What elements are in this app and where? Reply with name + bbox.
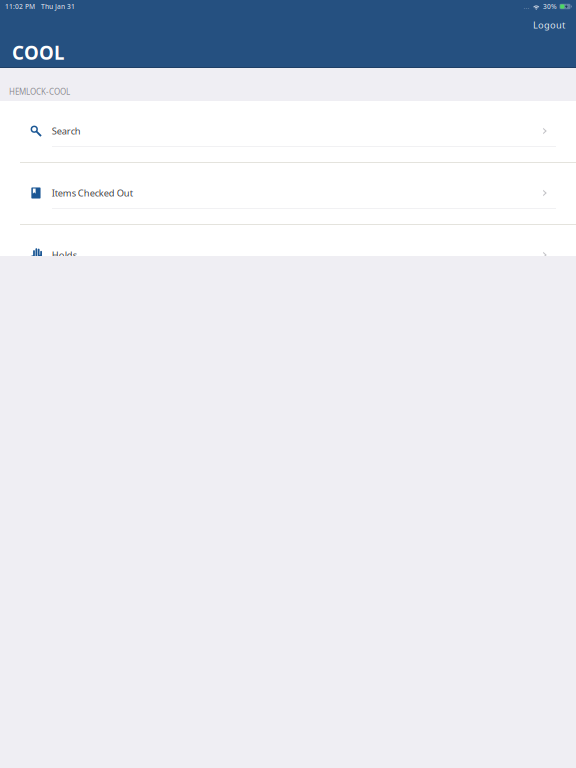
button[interactable]: Items Checked Out: [20, 178, 556, 209]
staticText: ...: [523, 2, 529, 11]
staticText: 30%: [543, 2, 557, 11]
staticText: Search: [52, 125, 81, 137]
staticText: Holds: [52, 249, 77, 261]
staticText: Items Checked Out: [52, 187, 133, 199]
staticText: COOL: [12, 40, 64, 65]
button[interactable]: Holds: [20, 240, 556, 271]
button[interactable]: Search: [20, 116, 556, 147]
button[interactable]: Logout: [521, 12, 576, 33]
staticText: HEMLOCK-COOL: [9, 86, 70, 97]
staticText: Thu Jan 31: [41, 2, 75, 11]
staticText: Logout: [533, 19, 565, 31]
staticText: 11:02 PM: [5, 2, 35, 11]
